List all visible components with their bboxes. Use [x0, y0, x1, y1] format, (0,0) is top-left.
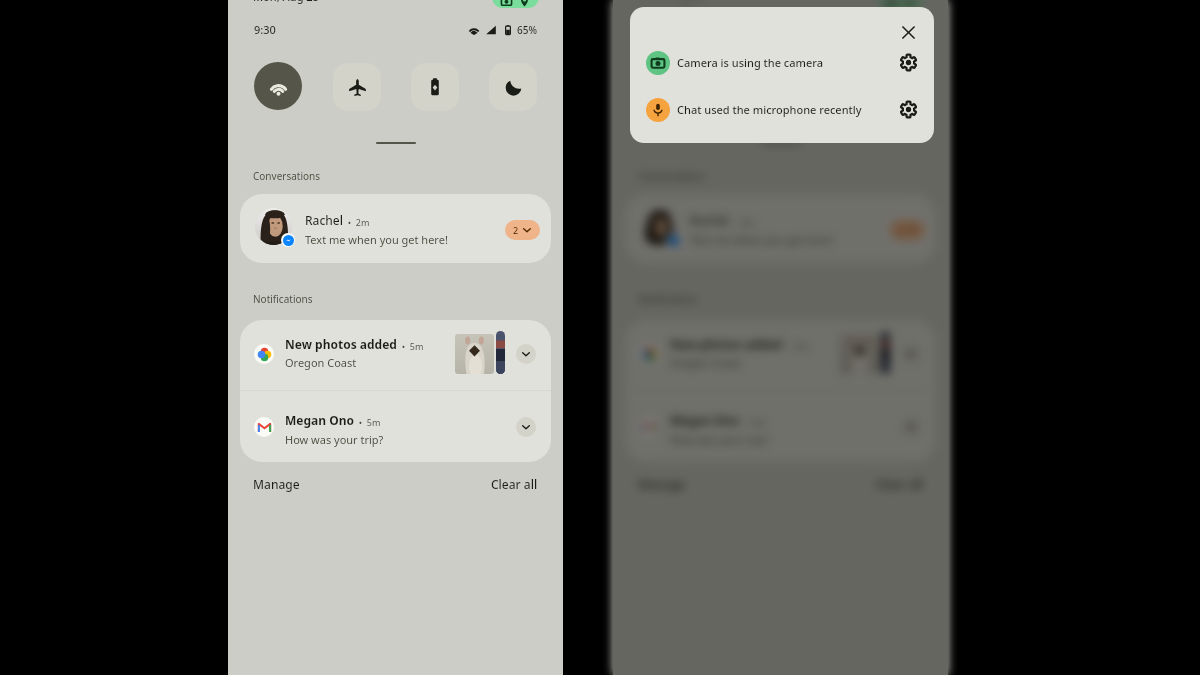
- staticText: Manage: [253, 476, 300, 492]
- staticText: Camera is using the camera: [677, 55, 823, 70]
- button[interactable]: Settings: [895, 96, 921, 122]
- staticText: 2: [513, 224, 519, 236]
- button[interactable]: Expand: [901, 344, 921, 364]
- staticText: • 2m: [343, 216, 370, 228]
- staticText: Chat used the microphone recently: [677, 102, 862, 117]
- button[interactable]: Chat used the microphone recently: [630, 93, 934, 127]
- button[interactable]: Megan Ono: [625, 391, 936, 462]
- button[interactable]: New photos added: [240, 320, 551, 390]
- staticText: Notifications: [253, 292, 313, 306]
- staticText: Conversations: [253, 169, 321, 183]
- staticText: Oregon Coast: [285, 355, 357, 370]
- button[interactable]: Rachel: [625, 194, 936, 263]
- staticText: Manage: [638, 476, 685, 492]
- staticText: Megan Ono: [285, 412, 354, 428]
- button[interactable]: Megan Ono: [240, 391, 551, 462]
- button[interactable]: Rachel: [240, 194, 551, 263]
- button[interactable]: New photos added: [625, 320, 936, 390]
- staticText: Text me when you get here!: [305, 232, 448, 247]
- staticText: Megan Ono: [670, 412, 739, 428]
- button[interactable]: Clear all: [491, 476, 538, 492]
- staticText: New photos added: [670, 336, 782, 352]
- button[interactable]: Expand: [516, 417, 536, 437]
- button[interactable]: 2: [505, 220, 540, 240]
- button[interactable]: Wi-Fi: [639, 62, 687, 110]
- button[interactable]: Expand: [516, 344, 536, 364]
- button[interactable]: Expand: [901, 417, 921, 437]
- button[interactable]: Airplane mode: [333, 63, 381, 111]
- staticText: Rachel: [305, 212, 343, 228]
- button[interactable]: Close: [893, 17, 923, 47]
- button[interactable]: Privacy indicators: [877, 0, 924, 8]
- staticText: Rachel: [690, 212, 728, 228]
- button[interactable]: Battery saver: [796, 63, 844, 111]
- button[interactable]: Manage: [638, 476, 685, 492]
- button[interactable]: 2: [890, 220, 925, 240]
- staticText: New photos added: [285, 336, 397, 352]
- button[interactable]: Airplane mode: [718, 63, 766, 111]
- button[interactable]: Settings: [895, 49, 921, 75]
- button[interactable]: Dark theme: [489, 63, 537, 111]
- button[interactable]: Clear all: [876, 476, 923, 492]
- staticText: How was your trip?: [285, 432, 384, 447]
- button[interactable]: Battery saver: [411, 63, 459, 111]
- button[interactable]: Privacy indicators: [492, 0, 539, 8]
- staticText: Clear all: [491, 476, 538, 492]
- staticText: 65%: [517, 23, 537, 37]
- staticText: • 5m: [397, 340, 424, 352]
- button[interactable]: Manage: [253, 476, 300, 492]
- staticText: 65%: [902, 23, 922, 37]
- staticText: 9:30: [254, 22, 276, 37]
- button[interactable]: Wi-Fi: [254, 62, 302, 110]
- staticText: Clear all: [876, 476, 923, 492]
- staticText: 2: [898, 224, 904, 236]
- staticText: • 5m: [354, 416, 381, 428]
- button[interactable]: Camera is using the camera: [630, 46, 934, 80]
- staticText: Mon, Aug 25: [253, 0, 319, 4]
- button[interactable]: Dark theme: [874, 63, 922, 111]
